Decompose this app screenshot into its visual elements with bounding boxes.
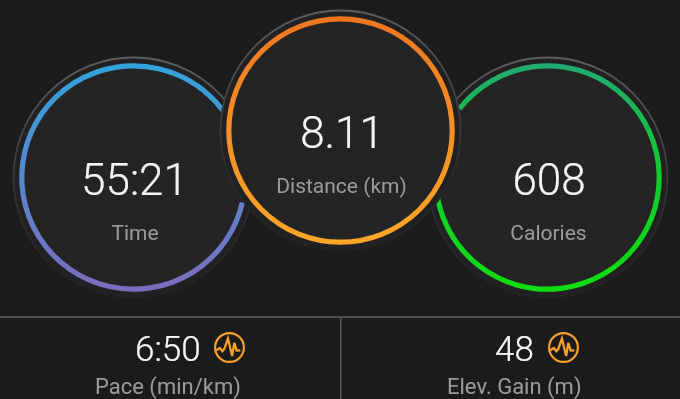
other: Heart rate	[548, 332, 579, 363]
staticText: 8.11	[300, 107, 384, 159]
staticText: Pace (min/km)	[95, 374, 241, 399]
button[interactable]: 8.11	[221, 107, 461, 217]
button[interactable]: 6:50	[18, 329, 318, 399]
button[interactable]: 48	[364, 329, 664, 399]
staticText: Calories	[510, 221, 587, 246]
staticText: 48	[495, 329, 534, 370]
staticText: 6:50	[135, 329, 201, 370]
button[interactable]: 608	[428, 154, 668, 264]
staticText: Time	[111, 221, 159, 246]
other: Heart rate	[214, 332, 245, 363]
button[interactable]: 55:21	[14, 154, 254, 264]
staticText: 55:21	[81, 154, 188, 206]
staticText: Distance (km)	[276, 174, 407, 199]
staticText: Elev. Gain (m)	[447, 374, 582, 399]
staticText: 608	[512, 154, 586, 206]
